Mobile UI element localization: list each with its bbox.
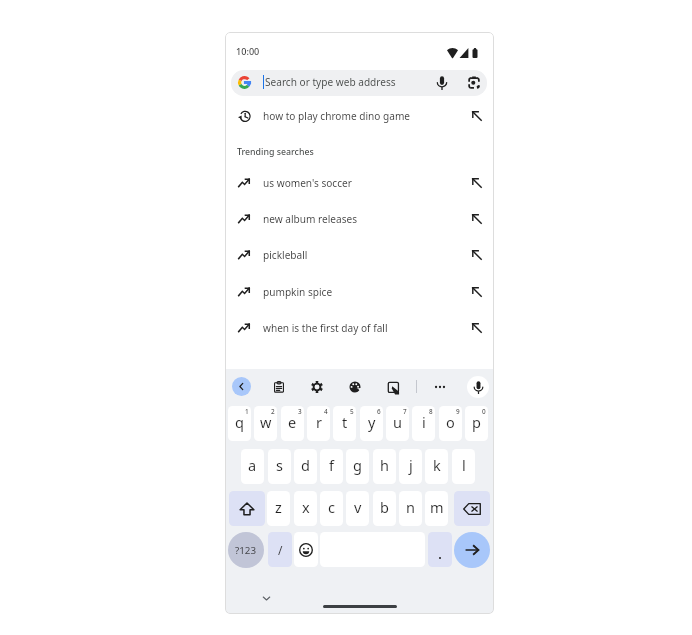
staticText: 6 bbox=[377, 407, 381, 416]
button[interactable]: More options bbox=[430, 377, 450, 397]
staticText: 9 bbox=[456, 407, 460, 416]
button[interactable]: new album releases bbox=[225, 204, 494, 234]
button[interactable]: h bbox=[373, 449, 396, 484]
staticText: z bbox=[275, 497, 282, 517]
button[interactable]: / bbox=[268, 532, 292, 567]
button[interactable]: Clipboard bbox=[269, 377, 289, 397]
button[interactable]: Backspace bbox=[454, 491, 490, 526]
button[interactable]: x bbox=[294, 491, 317, 526]
button[interactable]: n bbox=[399, 491, 422, 526]
staticText: r bbox=[316, 412, 322, 432]
button[interactable]: b bbox=[373, 491, 396, 526]
staticText: n bbox=[406, 497, 415, 517]
staticText: k bbox=[433, 455, 441, 475]
staticText: 7 bbox=[403, 407, 407, 416]
button[interactable]: pumpkin spice bbox=[225, 277, 494, 307]
button[interactable]: r bbox=[307, 406, 330, 441]
button[interactable]: i bbox=[412, 406, 435, 441]
button[interactable]: Search with Google Lens bbox=[461, 70, 486, 95]
staticText: x bbox=[302, 497, 310, 517]
button[interactable]: u bbox=[386, 406, 409, 441]
button[interactable]: e bbox=[281, 406, 304, 441]
button[interactable]: w bbox=[254, 406, 277, 441]
button[interactable]: f bbox=[320, 449, 343, 484]
staticText: 5 bbox=[350, 407, 354, 416]
staticText: v bbox=[354, 497, 362, 517]
staticText: how to play chrome dino game bbox=[263, 109, 411, 123]
button[interactable]: g bbox=[346, 449, 369, 484]
staticText: g bbox=[353, 455, 362, 475]
button[interactable]: p bbox=[465, 406, 488, 441]
staticText: l bbox=[462, 455, 466, 475]
button[interactable]: o bbox=[439, 406, 462, 441]
staticText: us women's soccer bbox=[263, 176, 352, 190]
button[interactable]: s bbox=[268, 449, 291, 484]
staticText: pumpkin spice bbox=[263, 285, 333, 299]
button[interactable]: z bbox=[267, 491, 290, 526]
staticText: new album releases bbox=[263, 212, 358, 226]
button[interactable]: y bbox=[360, 406, 383, 441]
staticText: q bbox=[235, 412, 244, 432]
staticText: pickleball bbox=[263, 248, 308, 262]
button[interactable]: l bbox=[452, 449, 475, 484]
button[interactable]: m bbox=[425, 491, 448, 526]
staticText: 1 bbox=[245, 407, 249, 416]
button[interactable]: how to play chrome dino game bbox=[225, 101, 494, 131]
staticText: Search or type web address bbox=[265, 75, 396, 89]
staticText: ?123 bbox=[235, 544, 257, 557]
button[interactable]: Period bbox=[428, 532, 452, 567]
staticText: Trending searches bbox=[237, 146, 314, 158]
button[interactable]: Voice input bbox=[467, 376, 489, 398]
staticText: 3 bbox=[298, 407, 302, 416]
staticText: j bbox=[409, 455, 413, 475]
button[interactable]: Search or type web address bbox=[231, 70, 487, 96]
staticText: f bbox=[329, 455, 334, 475]
button[interactable]: Hide keyboard bbox=[258, 590, 274, 606]
staticText: u bbox=[393, 412, 402, 432]
staticText: y bbox=[368, 412, 376, 432]
button[interactable]: a bbox=[241, 449, 264, 484]
button[interactable]: j bbox=[399, 449, 422, 484]
staticText: d bbox=[301, 455, 310, 475]
staticText: 8 bbox=[429, 407, 433, 416]
staticText: t bbox=[342, 412, 348, 432]
button[interactable]: v bbox=[346, 491, 369, 526]
button[interactable]: c bbox=[320, 491, 343, 526]
button[interactable]: Shift bbox=[229, 491, 265, 526]
button[interactable]: Voice search bbox=[429, 70, 454, 95]
button[interactable]: Emoji bbox=[294, 532, 318, 567]
staticText: 4 bbox=[324, 407, 328, 416]
staticText: 0 bbox=[482, 407, 486, 416]
staticText: e bbox=[288, 412, 297, 432]
staticText: 2 bbox=[271, 407, 275, 416]
staticText: w bbox=[260, 412, 272, 432]
staticText: s bbox=[276, 455, 283, 475]
button[interactable]: Settings bbox=[307, 377, 327, 397]
button[interactable]: when is the first day of fall bbox=[225, 313, 494, 343]
button[interactable]: d bbox=[294, 449, 317, 484]
button[interactable]: pickleball bbox=[225, 240, 494, 270]
staticText: 10:00 bbox=[236, 45, 260, 57]
staticText: a bbox=[248, 455, 257, 475]
button[interactable]: ?123 bbox=[228, 532, 264, 568]
button[interactable]: Back bbox=[232, 377, 251, 396]
button[interactable]: us women's soccer bbox=[225, 168, 494, 198]
staticText: p bbox=[472, 412, 481, 432]
staticText: h bbox=[380, 455, 389, 475]
button[interactable]: k bbox=[425, 449, 448, 484]
staticText: i bbox=[422, 412, 426, 432]
staticText: o bbox=[446, 412, 455, 432]
staticText: c bbox=[328, 497, 335, 517]
button[interactable]: Stickers bbox=[383, 377, 403, 397]
staticText: b bbox=[380, 497, 389, 517]
button[interactable]: q bbox=[228, 406, 251, 441]
staticText: m bbox=[430, 497, 444, 517]
staticText: when is the first day of fall bbox=[263, 321, 388, 335]
button[interactable]: Themes bbox=[345, 377, 365, 397]
button[interactable]: Enter bbox=[454, 532, 490, 568]
button[interactable]: t bbox=[333, 406, 356, 441]
staticText: / bbox=[278, 542, 283, 558]
